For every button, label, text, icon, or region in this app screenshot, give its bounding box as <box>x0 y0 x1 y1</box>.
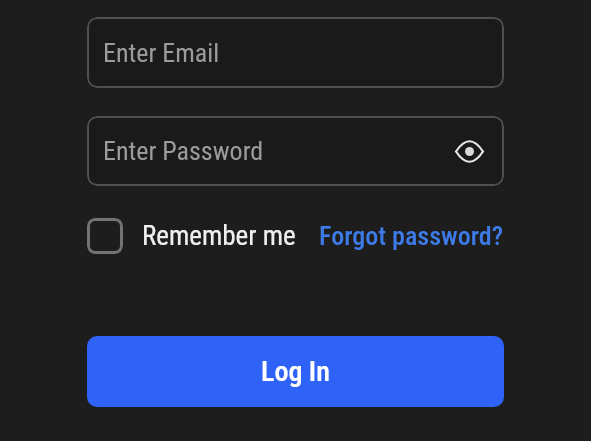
button[interactable]: Enter Email <box>87 17 504 88</box>
button[interactable]: Forgot password? <box>319 221 504 251</box>
staticText: Enter Email <box>103 38 220 68</box>
button[interactable]: Log In <box>87 336 504 407</box>
staticText: Remember me <box>142 220 296 252</box>
button[interactable] <box>87 218 123 254</box>
staticText: Enter Password <box>103 136 264 166</box>
button[interactable]: Enter Password <box>87 116 504 186</box>
staticText: Log In <box>261 355 330 388</box>
